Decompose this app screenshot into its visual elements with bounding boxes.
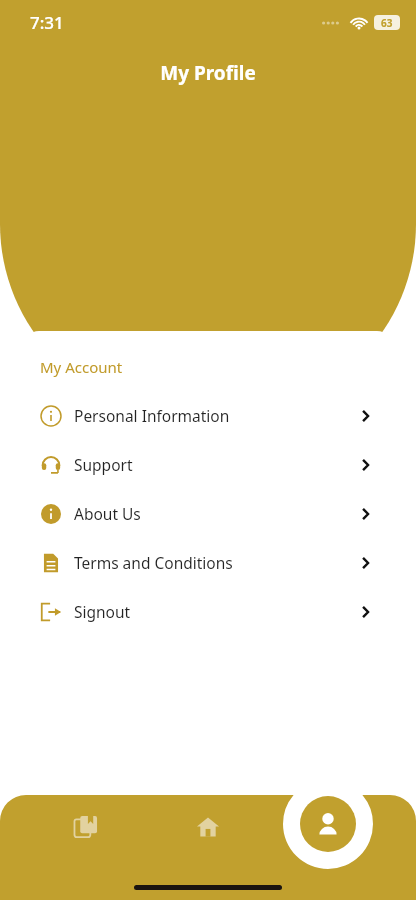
- button[interactable]: Support: [23, 440, 393, 489]
- button[interactable]: Home: [184, 803, 232, 851]
- staticText: Support: [74, 454, 358, 475]
- staticText: My Account: [40, 357, 123, 377]
- staticText: About Us: [74, 503, 358, 524]
- button[interactable]: Profile: [300, 796, 356, 852]
- staticText: 63: [381, 16, 393, 30]
- button[interactable]: Personal Information: [23, 391, 393, 440]
- button[interactable]: About Us: [23, 489, 393, 538]
- staticText: Personal Information: [74, 405, 358, 426]
- staticText: My Profile: [0, 60, 416, 86]
- staticText: Terms and Conditions: [74, 552, 358, 573]
- staticText: 7:31: [30, 11, 64, 34]
- staticText: Signout: [74, 601, 358, 622]
- button[interactable]: Terms and Conditions: [23, 538, 393, 587]
- button[interactable]: Collections: [62, 803, 110, 851]
- button[interactable]: Signout: [23, 587, 393, 636]
